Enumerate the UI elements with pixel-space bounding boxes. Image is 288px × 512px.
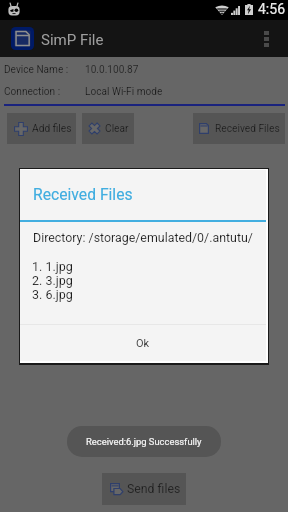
staticText: SimP File [41,31,104,49]
staticText: Device Name : [4,64,69,76]
staticText: 10.0.100.87 [85,64,139,76]
staticText: Received Files [33,185,133,203]
staticText: 1. 1.jpg 2. 3.jpg 3. 6.jpg [32,259,73,302]
staticText: Received Files [215,123,280,135]
button[interactable]: Clear [82,113,134,144]
button[interactable]: Send files [102,473,186,505]
staticText: Ok [136,337,150,350]
button[interactable]: More options [254,20,278,57]
staticText: Send files [127,482,181,496]
button[interactable]: Add files [7,113,76,144]
staticText: Directory: /storage/emulated/0/.antutu/ [33,230,253,245]
staticText: 4:56 [258,1,285,17]
button[interactable]: Received Files [193,113,285,144]
staticText: Received:6.jpg Successfully [86,436,202,447]
staticText: Clear [105,123,129,135]
staticText: Local Wi-Fi mode [85,86,163,98]
staticText: Connection : [4,86,61,98]
button[interactable]: Ok [20,325,266,361]
staticText: Add files [32,123,72,135]
